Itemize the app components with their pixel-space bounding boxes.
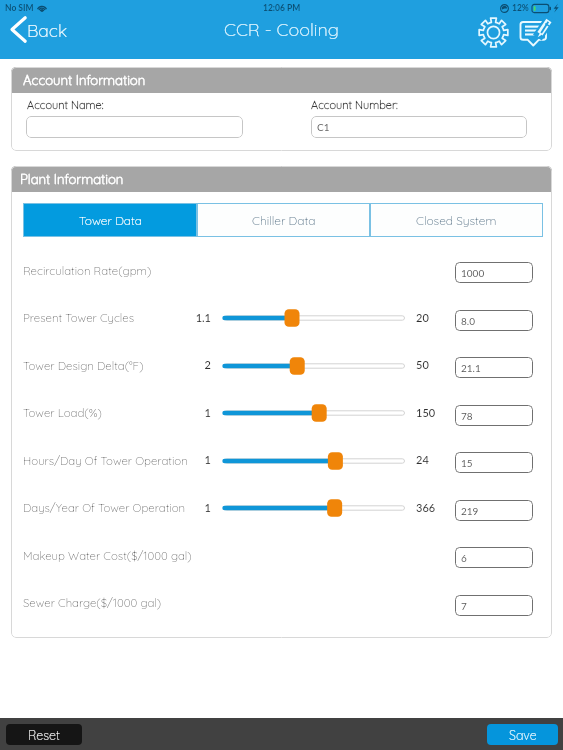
staticText: 1	[171, 406, 211, 419]
staticText: 7	[461, 600, 467, 612]
button[interactable]: Settings	[473, 12, 513, 52]
staticText: 15	[461, 457, 473, 469]
staticText: Account Name:	[27, 98, 104, 112]
staticText: 1	[171, 501, 211, 514]
staticText: Closed System	[416, 213, 497, 228]
button[interactable]: Chiller Data	[197, 203, 370, 237]
staticText: Recirculation Rate(gpm)	[23, 263, 152, 277]
staticText: 8.0	[461, 315, 475, 327]
staticText: Chiller Data	[252, 213, 316, 228]
button[interactable]: Back	[6, 11, 72, 48]
button[interactable]: 1000	[455, 262, 533, 283]
button[interactable]: C1	[311, 116, 527, 138]
staticText: Sewer Charge($/1000 gal)	[23, 595, 162, 609]
staticText: 21.1	[461, 362, 481, 374]
staticText: Reset	[28, 727, 60, 743]
staticText: 1	[171, 453, 211, 466]
staticText: Account Information	[23, 72, 146, 88]
staticText: Back	[27, 19, 68, 41]
staticText: Tower Design Delta(°F)	[23, 358, 144, 372]
staticText: No SIM	[5, 3, 34, 13]
button[interactable]: Closed System	[370, 203, 543, 237]
button[interactable]: 78	[455, 405, 533, 426]
staticText: 50	[416, 358, 429, 371]
staticText: Save	[509, 727, 537, 743]
button[interactable]: Save	[487, 724, 558, 745]
staticText: CCR - Cooling	[224, 18, 339, 41]
staticText: 20	[416, 311, 429, 324]
button[interactable]: 7	[455, 595, 533, 616]
staticText: 1000	[461, 267, 485, 279]
button[interactable]: 8.0	[455, 310, 533, 331]
staticText: Present Tower Cycles	[23, 310, 134, 324]
staticText: 219	[461, 505, 479, 517]
staticText: 12%	[512, 3, 529, 13]
staticText: Hours/Day Of Tower Operation	[23, 453, 188, 467]
staticText: Plant Information	[20, 171, 124, 187]
staticText: 150	[416, 406, 436, 419]
staticText: 6	[461, 552, 467, 564]
staticText: Makeup Water Cost($/1000 gal)	[23, 548, 192, 562]
button[interactable]: Tower Data	[23, 203, 197, 237]
staticText: 2	[171, 358, 211, 371]
staticText: 12:06 PM	[263, 3, 301, 13]
staticText: Days/Year Of Tower Operation	[23, 500, 186, 514]
staticText: Account Number:	[311, 98, 398, 112]
button[interactable]: Reset	[6, 724, 82, 745]
staticText: 78	[461, 410, 473, 422]
staticText: Tower Load(%)	[23, 405, 102, 419]
button[interactable]: Notes	[515, 12, 555, 52]
staticText: 1.1	[171, 311, 211, 324]
button[interactable]: 21.1	[455, 357, 533, 378]
staticText: 366	[416, 501, 436, 514]
button[interactable]: 15	[455, 452, 533, 473]
staticText: Tower Data	[79, 213, 142, 228]
staticText: C1	[317, 121, 330, 133]
button[interactable]: 219	[455, 500, 533, 521]
button[interactable]: 6	[455, 547, 533, 568]
button[interactable]	[26, 116, 243, 138]
staticText: 24	[416, 453, 429, 466]
